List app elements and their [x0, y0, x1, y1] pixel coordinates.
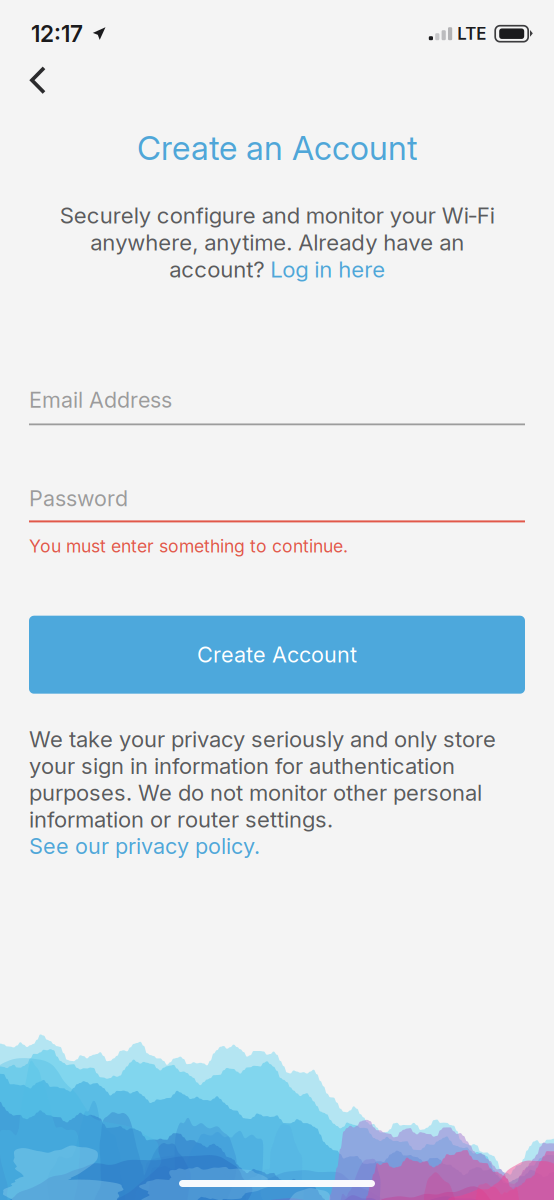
button[interactable]: See our privacy policy. — [29, 833, 260, 859]
staticText: We take your privacy seriously and only … — [29, 726, 496, 833]
button[interactable]: Create Account — [29, 616, 525, 694]
staticText: Email Address — [29, 387, 172, 413]
staticText: Password — [29, 485, 128, 511]
staticText: Create Account — [197, 642, 357, 668]
staticText: Create an Account — [137, 128, 417, 168]
staticText: LTE — [457, 23, 486, 44]
staticText: 12:17 — [31, 20, 83, 47]
staticText: See our privacy policy. — [29, 833, 260, 859]
button[interactable]: Back — [0, 60, 70, 104]
staticText: You must enter something to continue. — [29, 535, 348, 557]
staticText: Securely configure and monitor your Wi‑F… — [59, 202, 494, 283]
